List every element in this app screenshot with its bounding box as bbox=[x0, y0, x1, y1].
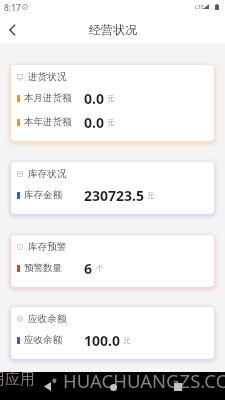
button[interactable]: 库存预警 bbox=[11, 235, 214, 287]
staticText: 库存金额 bbox=[24, 189, 62, 201]
button[interactable]: 进货状况 bbox=[11, 65, 214, 141]
staticText: 库存预警 bbox=[28, 241, 67, 253]
staticText: 0.0 bbox=[84, 113, 104, 132]
staticText: LTE bbox=[195, 3, 205, 11]
staticText: 进货状况 bbox=[28, 71, 67, 83]
staticText: 元 bbox=[107, 118, 115, 127]
staticText: 0.0 bbox=[84, 89, 104, 108]
staticText: 个 bbox=[96, 264, 104, 273]
staticText: 用应用 bbox=[0, 370, 35, 389]
staticText: • bbox=[51, 368, 58, 393]
staticText: 应收余额 bbox=[28, 313, 67, 325]
button[interactable]: Back bbox=[37, 377, 58, 396]
button[interactable]: 应收余额 bbox=[11, 307, 214, 359]
button[interactable]: 库存状况 bbox=[11, 162, 214, 214]
staticText: 元 bbox=[107, 94, 115, 103]
staticText: 库存状况 bbox=[28, 168, 67, 180]
button[interactable]: Home bbox=[103, 378, 124, 397]
staticText: 元 bbox=[147, 191, 155, 200]
staticText: 预警数量 bbox=[24, 262, 62, 274]
staticText: 8:17 bbox=[4, 2, 21, 14]
staticText: 本年进货额 bbox=[24, 116, 72, 128]
staticText: 经营状况 bbox=[89, 22, 137, 37]
staticText: 本月进货额 bbox=[24, 92, 72, 104]
button[interactable]: Back bbox=[0, 16, 24, 43]
staticText: 100.0 bbox=[84, 331, 120, 350]
staticText: 6 bbox=[84, 259, 93, 278]
staticText: 元 bbox=[123, 336, 131, 345]
staticText: 230723.5 bbox=[84, 186, 144, 205]
staticText: 应收余额 bbox=[24, 334, 62, 346]
staticText: HUACHUANGZS.CO bbox=[63, 368, 225, 393]
button[interactable]: Recent apps bbox=[167, 377, 188, 396]
